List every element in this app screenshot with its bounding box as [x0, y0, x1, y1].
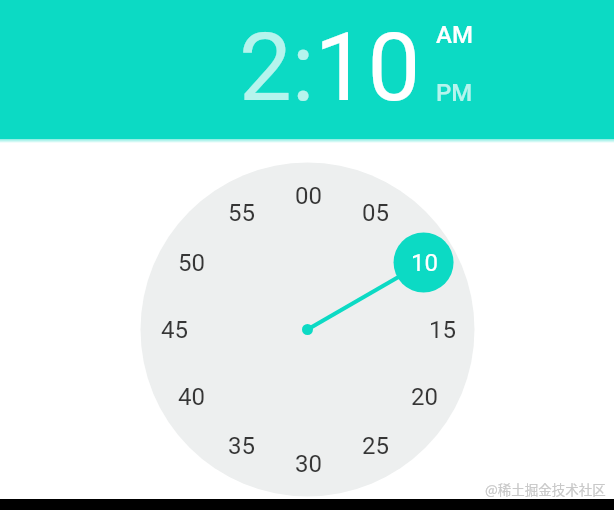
button[interactable]: 10: [394, 245, 454, 281]
staticText: 15: [429, 316, 456, 344]
button[interactable]: 20: [394, 379, 454, 415]
staticText: 35: [228, 432, 255, 460]
staticText: @稀土掘金技术社区: [485, 479, 606, 499]
staticText: 05: [362, 199, 389, 227]
button[interactable]: 30: [278, 446, 338, 482]
button[interactable]: 25: [345, 428, 405, 464]
button[interactable]: AM: [419, 15, 489, 55]
staticText: 45: [161, 316, 188, 344]
staticText: 2:10: [239, 13, 421, 123]
staticText: PM: [436, 79, 473, 107]
staticText: AM: [436, 21, 473, 49]
button[interactable]: 40: [161, 379, 221, 415]
button[interactable]: PM: [419, 73, 489, 113]
staticText: 20: [411, 383, 438, 411]
button[interactable]: 15: [412, 312, 472, 348]
button[interactable]: 55: [211, 195, 271, 231]
staticText: 30: [295, 450, 322, 478]
button[interactable]: 45: [144, 312, 204, 348]
staticText: 00: [295, 182, 322, 210]
button[interactable]: 50: [161, 245, 221, 281]
staticText: 10: [411, 249, 438, 277]
button[interactable]: 35: [211, 428, 271, 464]
button[interactable]: 2:10: [200, 8, 460, 128]
button[interactable]: 00: [278, 178, 338, 214]
staticText: 50: [178, 249, 205, 277]
button[interactable]: 05: [345, 195, 405, 231]
staticText: 55: [228, 199, 255, 227]
staticText: 40: [178, 383, 205, 411]
staticText: 25: [362, 432, 389, 460]
